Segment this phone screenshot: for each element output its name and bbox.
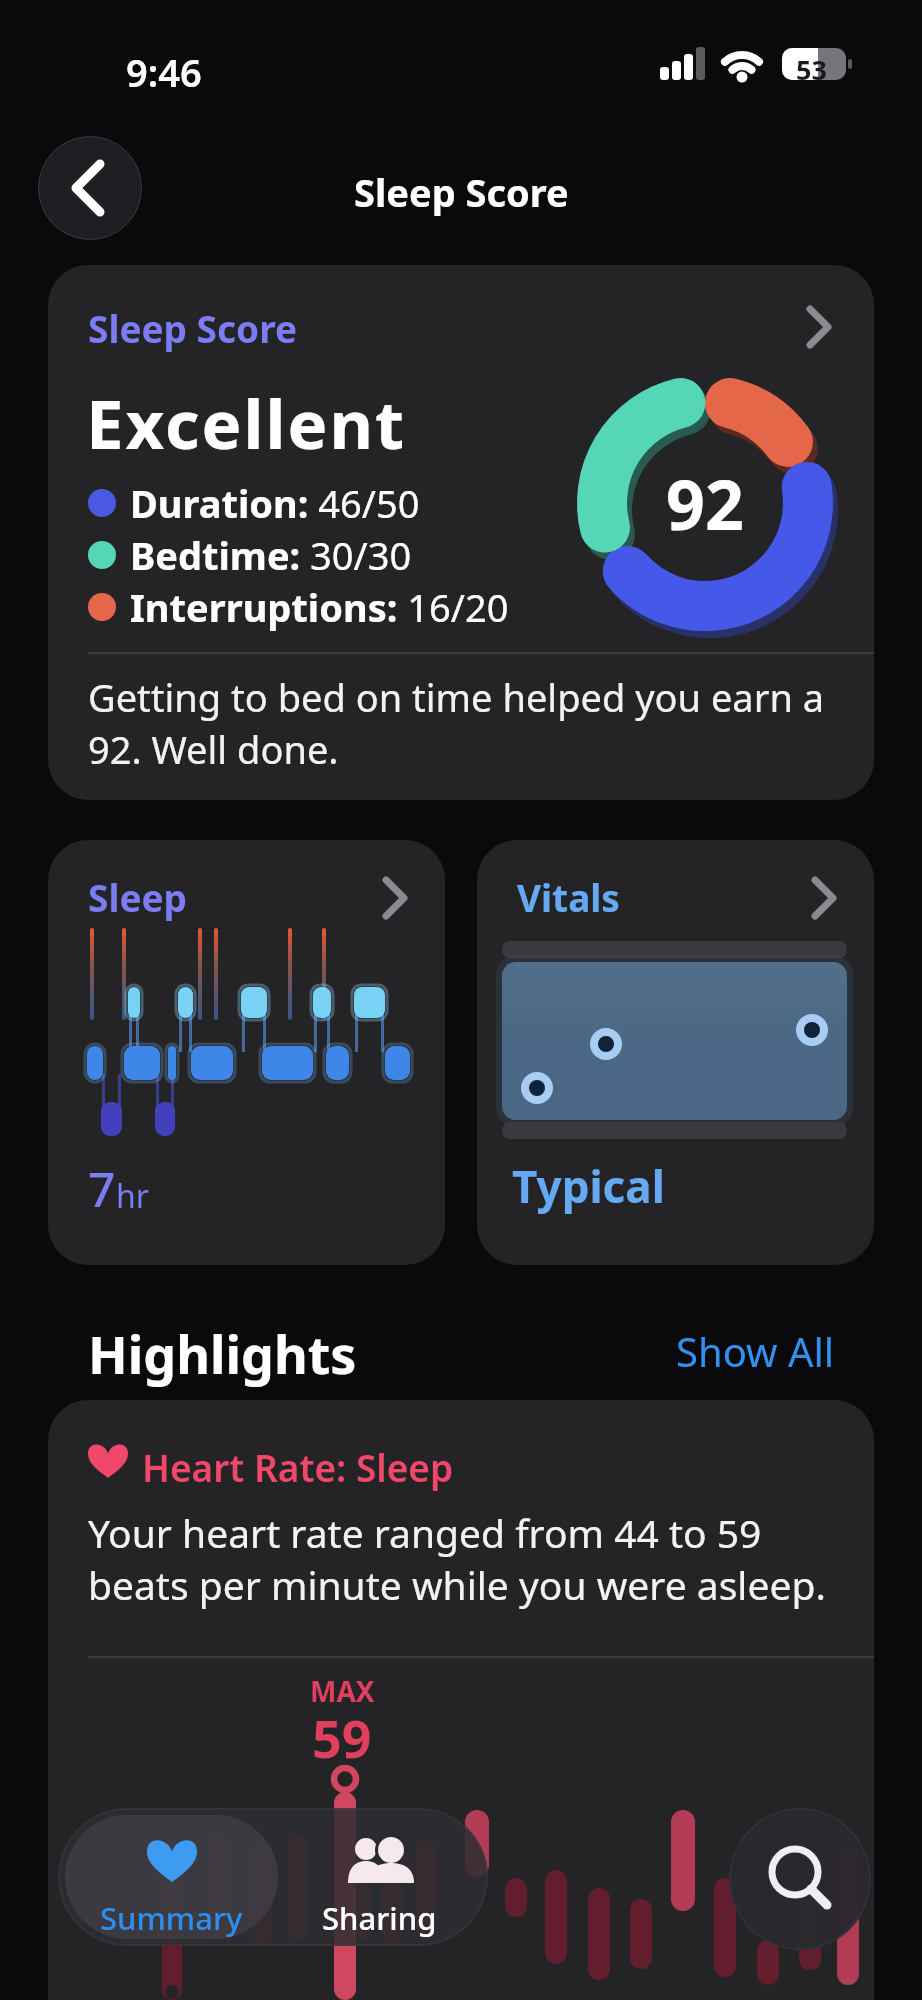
staticText: Bedtime: 30/30 (130, 529, 412, 581)
button[interactable]: Sleep Score (48, 265, 874, 800)
staticText: Heart Rate: Sleep (142, 1442, 454, 1492)
staticText: Sleep Score (354, 166, 569, 218)
staticText: Sleep (88, 872, 187, 922)
staticText: Getting to bed on time helped you earn a… (88, 671, 825, 775)
staticText: Excellent (86, 377, 407, 468)
staticText: hr (116, 1174, 149, 1218)
staticText: Vitals (517, 872, 620, 922)
button[interactable]: Sleep (48, 840, 445, 1265)
staticText: 53 (796, 51, 827, 88)
staticText: 92 (666, 457, 744, 550)
staticText: Sharing (322, 1897, 437, 1939)
staticText: Your heart rate ranged from 44 to 59 bea… (88, 1506, 826, 1611)
staticText: Duration: 46/50 (130, 477, 420, 529)
button[interactable]: Sharing (278, 1815, 481, 1939)
staticText: Interruptions: 16/20 (130, 581, 509, 633)
button[interactable]: Show All (676, 1324, 835, 1378)
staticText: 7 (88, 1156, 116, 1221)
staticText: 59 (312, 1702, 372, 1773)
button[interactable] (729, 1808, 871, 1950)
button[interactable] (38, 136, 142, 240)
staticText: Sleep Score (88, 303, 298, 353)
staticText: MAX (310, 1672, 375, 1710)
staticText: Show All (676, 1324, 835, 1378)
staticText: Summary (100, 1897, 243, 1939)
button[interactable]: Vitals (477, 840, 874, 1265)
button[interactable]: Heart Rate: Sleep (48, 1400, 874, 2000)
button[interactable]: Summary (65, 1815, 278, 1939)
staticText: Typical (512, 1156, 665, 1216)
staticText: 9:46 (126, 46, 202, 98)
staticText: Highlights (88, 1318, 357, 1389)
